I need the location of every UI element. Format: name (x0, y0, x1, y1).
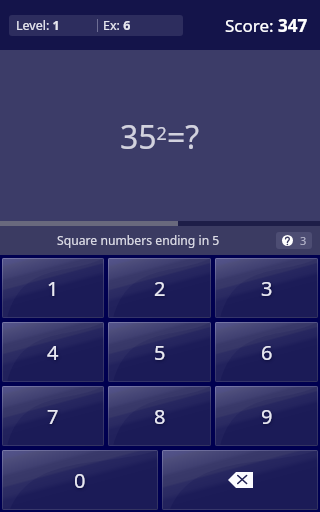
staticText: 7 (47, 403, 59, 430)
staticText: 6 (261, 339, 273, 366)
staticText: 9 (261, 403, 273, 430)
button[interactable]: Level: 1 (9, 15, 183, 36)
button[interactable]: 0 (2, 450, 158, 510)
button[interactable]: 1 (2, 258, 104, 318)
staticText: Ex: 6 (103, 17, 131, 34)
staticText: 1 (47, 275, 59, 302)
button[interactable]: 3 (215, 258, 318, 318)
staticText: Square numbers ending in 5 (57, 232, 220, 249)
button[interactable]: Backspace (162, 450, 318, 510)
button[interactable]: 9 (215, 386, 318, 446)
button[interactable]: Hints remaining: 3 (276, 232, 312, 249)
staticText: 352=? (120, 115, 200, 159)
staticText: 4 (47, 339, 59, 366)
button[interactable]: 7 (2, 386, 104, 446)
button[interactable]: 2 (108, 258, 211, 318)
staticText: 3 (300, 233, 307, 248)
button[interactable]: 8 (108, 386, 211, 446)
staticText: 0 (74, 467, 86, 494)
staticText: 3 (261, 275, 273, 302)
button[interactable]: 6 (215, 322, 318, 382)
button[interactable]: 5 (108, 322, 211, 382)
staticText: 5 (154, 339, 166, 366)
staticText: 8 (154, 403, 166, 430)
staticText: 2 (154, 275, 166, 302)
button[interactable]: 4 (2, 322, 104, 382)
staticText: Level: 1 (16, 17, 60, 34)
staticText: Score: 347 (225, 14, 308, 37)
